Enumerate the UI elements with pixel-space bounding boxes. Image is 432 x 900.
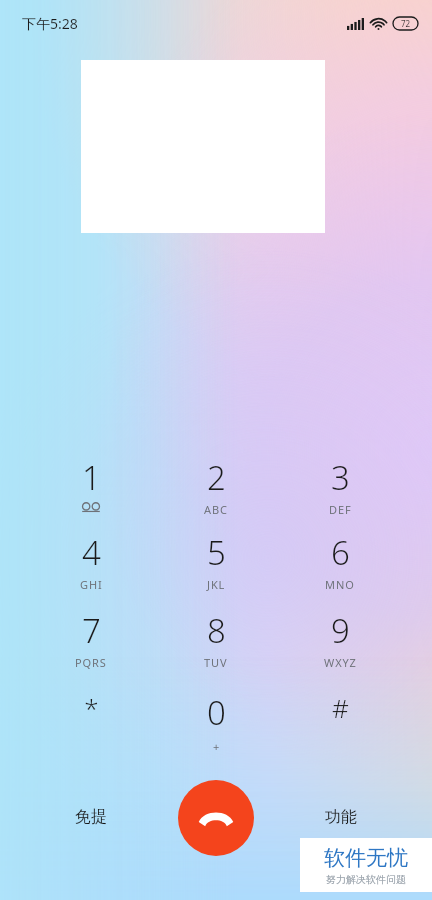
staticText: 5 (207, 530, 226, 575)
staticText: 功能 (325, 807, 357, 827)
button[interactable]: 功能 (302, 797, 380, 837)
button[interactable]: 3 (298, 455, 382, 523)
staticText: 8 (207, 608, 226, 653)
staticText: ABC (204, 502, 228, 517)
button[interactable]: * (49, 690, 133, 758)
staticText: MNO (325, 577, 355, 592)
button[interactable]: 0 (174, 690, 258, 758)
staticText: 4 (82, 530, 101, 575)
staticText: 9 (331, 608, 350, 653)
staticText: 努力解决软件问题 (326, 873, 406, 886)
staticText: GHI (80, 577, 103, 592)
staticText: PQRS (75, 655, 107, 670)
staticText: 下午5:28 (22, 14, 78, 33)
staticText: 6 (331, 530, 350, 575)
staticText: + (213, 739, 221, 754)
button[interactable]: End call (178, 780, 254, 856)
button[interactable]: 6 (298, 530, 382, 598)
button[interactable]: 1 (49, 455, 133, 523)
staticText: 0 (207, 690, 226, 735)
staticText: 1 (82, 455, 101, 500)
staticText: # (332, 690, 349, 725)
button[interactable]: # (298, 690, 382, 758)
staticText: TUV (204, 655, 228, 670)
staticText: DEF (329, 502, 352, 517)
staticText: 免提 (75, 807, 107, 827)
staticText: 72 (401, 18, 411, 29)
staticText: 7 (82, 608, 101, 653)
button[interactable]: 8 (174, 608, 258, 676)
staticText: 软件无忧 (324, 845, 408, 871)
button[interactable]: 5 (174, 530, 258, 598)
button[interactable]: 4 (49, 530, 133, 598)
staticText: JKL (207, 577, 226, 592)
button[interactable]: 2 (174, 455, 258, 523)
button[interactable]: 9 (298, 608, 382, 676)
staticText: 2 (207, 455, 226, 500)
staticText: 3 (331, 455, 350, 500)
staticText: WXYZ (324, 655, 357, 670)
button[interactable]: 免提 (52, 797, 130, 837)
button[interactable]: 7 (49, 608, 133, 676)
staticText: * (84, 690, 99, 725)
